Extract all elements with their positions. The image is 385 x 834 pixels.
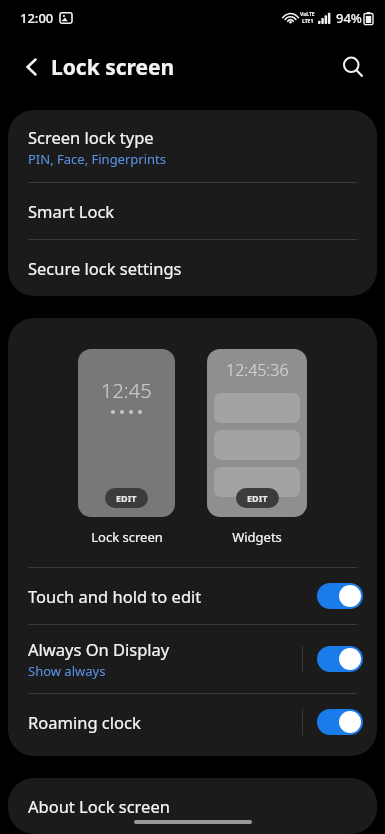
button[interactable]: Smart Lock (8, 183, 377, 239)
staticText: 12:45:36 (226, 359, 289, 381)
button[interactable] (317, 646, 363, 672)
button[interactable]: About Lock screen (8, 778, 377, 834)
button[interactable]: Roaming clock (8, 694, 377, 750)
staticText: Lock screen (51, 53, 175, 82)
staticText: VoLTE (300, 11, 315, 18)
staticText: Secure lock settings (28, 257, 182, 279)
staticText: Screen lock type (28, 126, 154, 148)
button[interactable] (317, 583, 363, 609)
button[interactable]: Screen lock type (8, 110, 377, 182)
staticText: Show always (28, 662, 106, 680)
staticText: Smart Lock (28, 200, 115, 222)
staticText: Widgets (232, 528, 282, 546)
staticText: About Lock screen (28, 795, 170, 817)
staticText: PIN, Face, Fingerprints (28, 150, 166, 168)
staticText: Touch and hold to edit (28, 585, 202, 607)
staticText: 12:45 (101, 377, 152, 404)
staticText: 12:00 (20, 9, 54, 27)
button[interactable]: Secure lock settings (8, 240, 377, 296)
staticText: Always On Display (28, 638, 170, 660)
button[interactable]: Touch and hold to edit (8, 568, 377, 624)
staticText: Roaming clock (28, 711, 141, 733)
button[interactable]: Search (330, 44, 376, 90)
button[interactable]: Back (8, 43, 56, 91)
staticText: Lock screen (91, 528, 163, 546)
button[interactable]: EDIT (236, 488, 279, 508)
button[interactable]: EDIT (105, 488, 148, 508)
button[interactable] (317, 709, 363, 735)
staticText: EDIT (247, 492, 268, 504)
staticText: LTE1 (302, 18, 314, 25)
staticText: 94% (336, 9, 362, 27)
button[interactable]: 12:45:36 (207, 349, 307, 546)
button[interactable]: 12:45 (78, 349, 175, 546)
staticText: EDIT (116, 492, 137, 504)
button[interactable]: Always On Display (8, 625, 377, 693)
